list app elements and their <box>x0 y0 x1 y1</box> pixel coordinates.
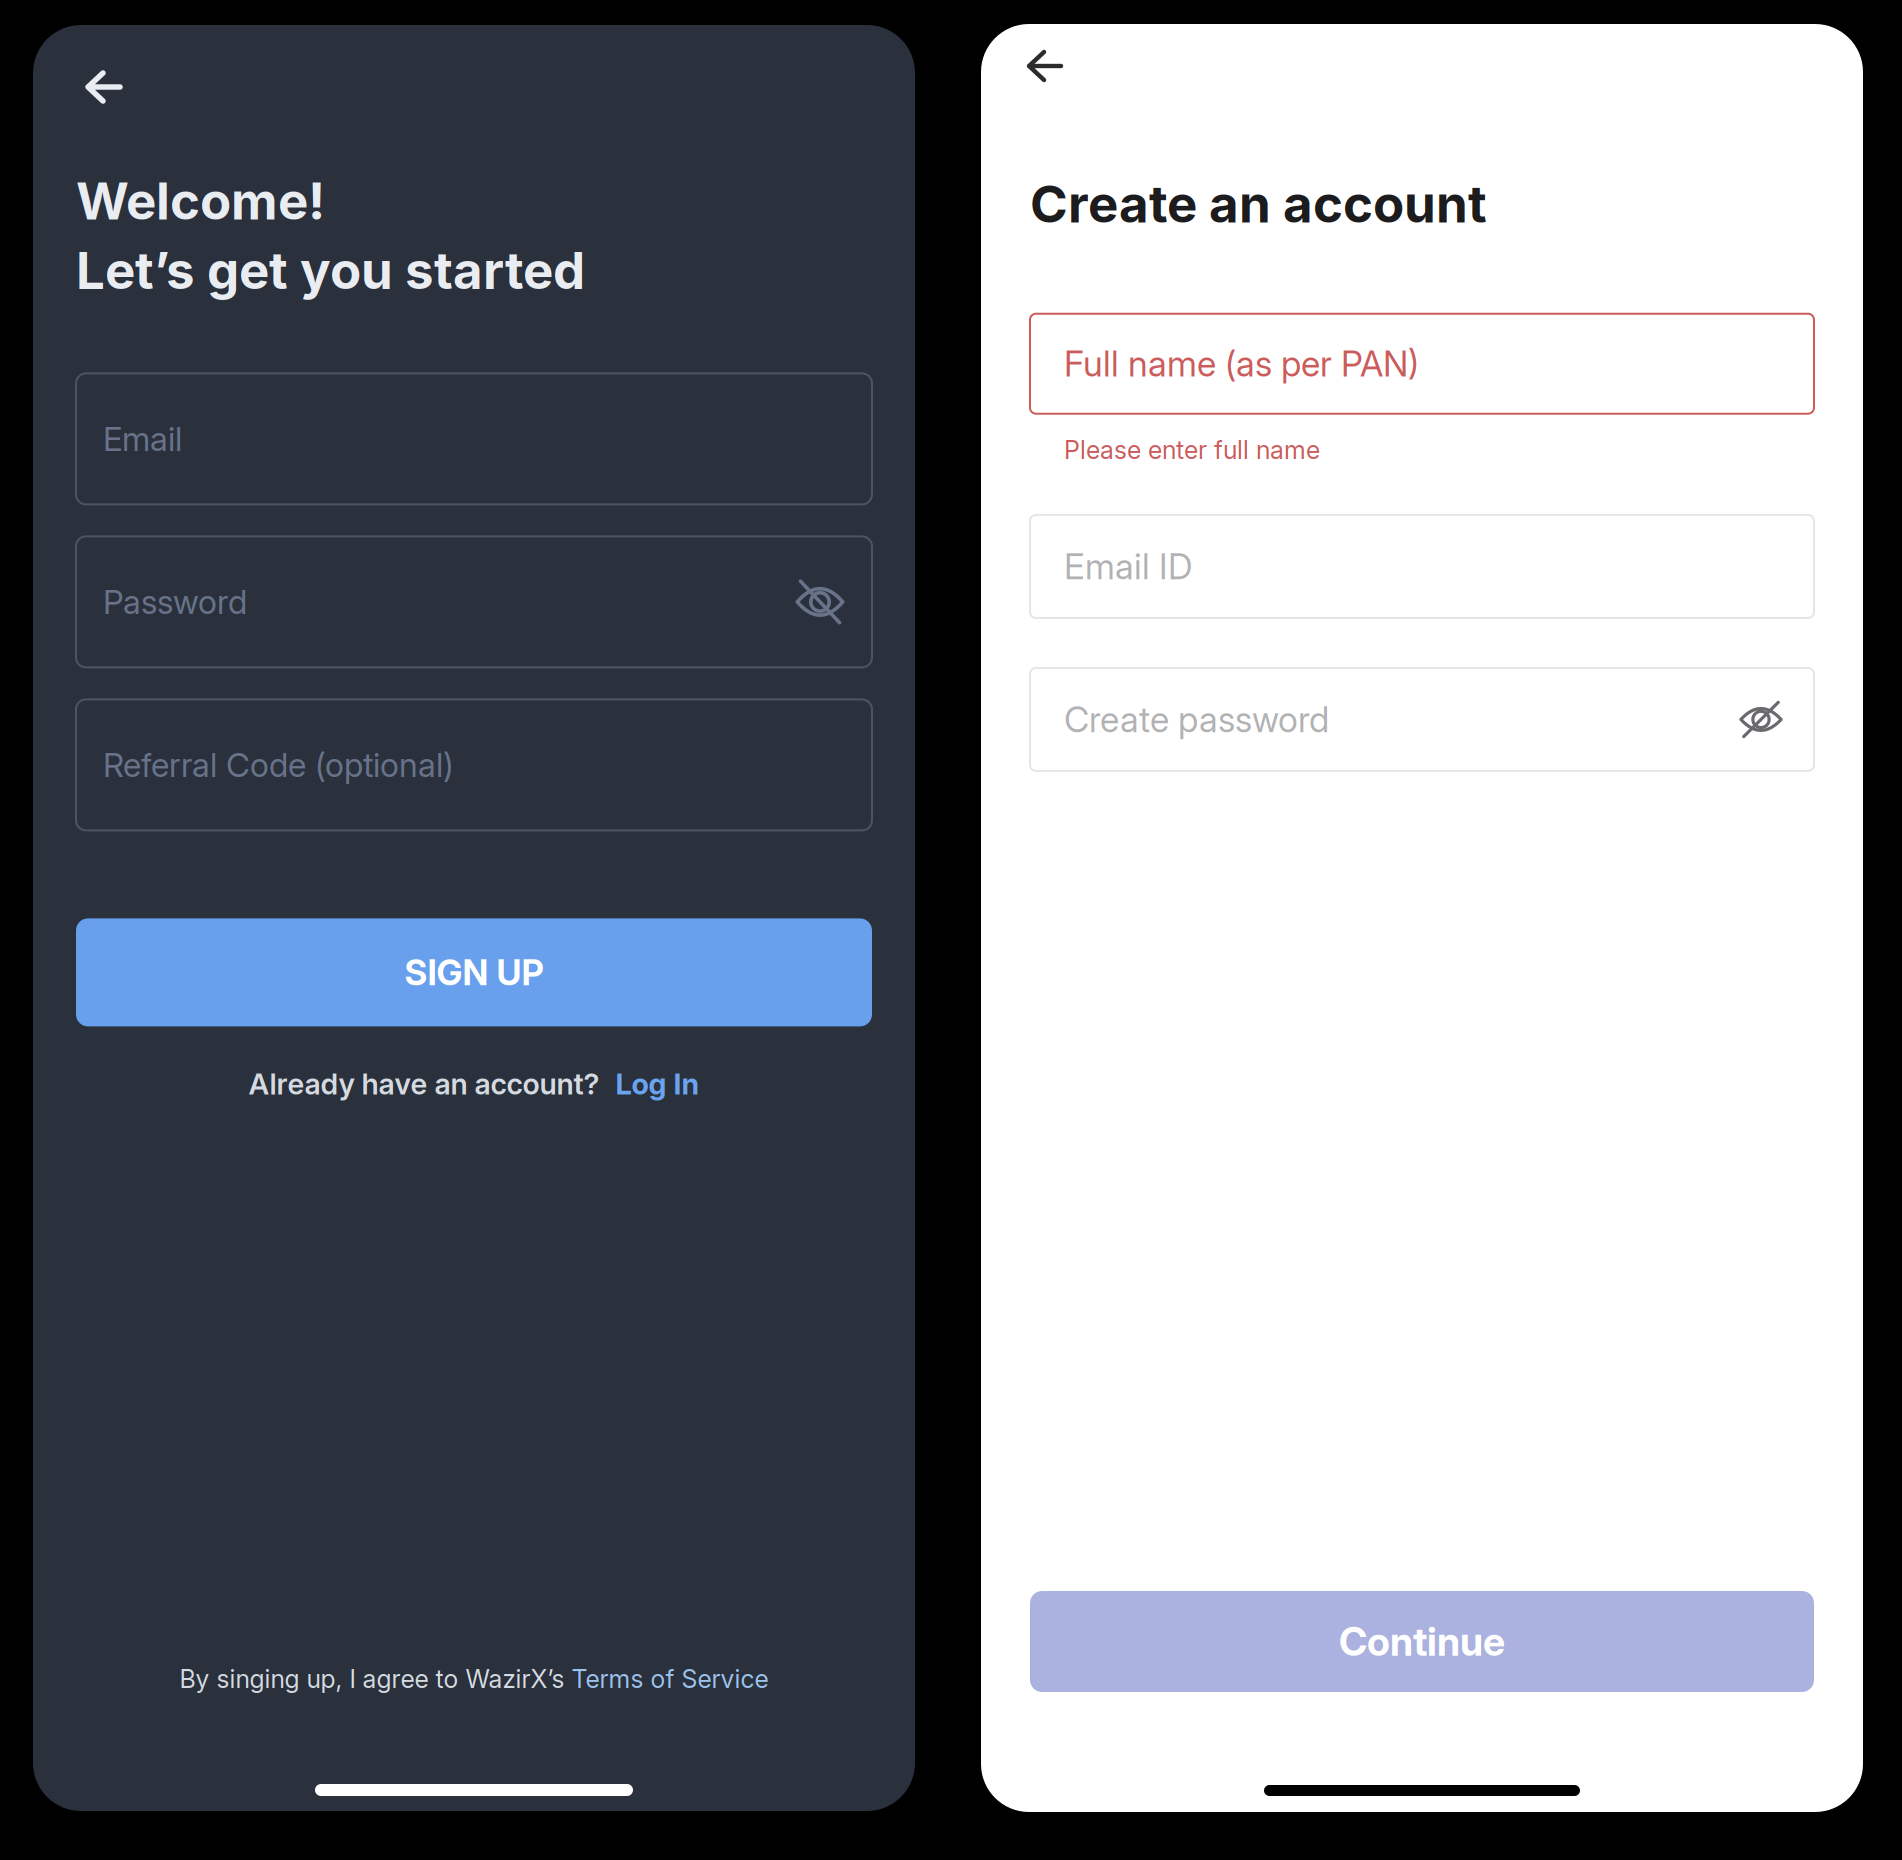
staticText: Email ID <box>1064 545 1192 588</box>
button[interactable]: Already have an account? <box>76 1066 872 1101</box>
staticText: Referral Code (optional) <box>103 745 454 785</box>
staticText: Let’s get you started <box>76 240 585 301</box>
staticText: Full name (as per PAN) <box>1064 342 1419 385</box>
staticText: Continue <box>1339 1618 1505 1665</box>
staticText: SIGN UP <box>404 951 543 993</box>
staticText: By singing up, I agree to WazirX’s <box>179 1664 571 1694</box>
button[interactable]: SIGN UP <box>76 918 872 1026</box>
staticText: Log In <box>615 1066 699 1101</box>
staticText: Already have an account? <box>248 1066 599 1101</box>
staticText: Create password <box>1064 698 1329 741</box>
staticText: Create an account <box>1030 173 1487 235</box>
staticText: Email <box>103 419 182 459</box>
staticText: Welcome! <box>76 170 325 232</box>
staticText: Terms of Service <box>571 1664 768 1694</box>
button[interactable]: Continue <box>1030 1591 1814 1692</box>
staticText: Password <box>103 582 247 622</box>
button[interactable]: Back <box>85 39 225 135</box>
staticText: Please enter full name <box>1064 435 1320 465</box>
button[interactable]: Back <box>1026 20 1166 112</box>
